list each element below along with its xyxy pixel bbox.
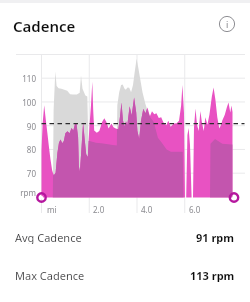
staticText: 80 [16,144,36,155]
staticText: 6.0 [189,204,201,215]
staticText: 4.0 [141,204,153,215]
staticText: mi [47,204,57,215]
staticText: 110 [16,73,36,84]
staticText: Cadence [13,16,76,36]
button[interactable]: Info [219,16,235,32]
staticText: 90 [16,121,36,132]
staticText: 2.0 [93,204,105,215]
staticText: 70 [16,168,36,179]
staticText: 113 rpm [190,268,235,282]
staticText: Avg Cadence [15,230,82,244]
staticText: rpm [14,187,36,198]
staticText: 91 rpm [196,230,235,244]
staticText: Max Cadence [15,268,85,282]
staticText: i [226,18,229,30]
button[interactable]: Avg Cadence [0,230,250,244]
staticText: 100 [16,97,36,108]
button[interactable]: Max Cadence [0,268,250,282]
